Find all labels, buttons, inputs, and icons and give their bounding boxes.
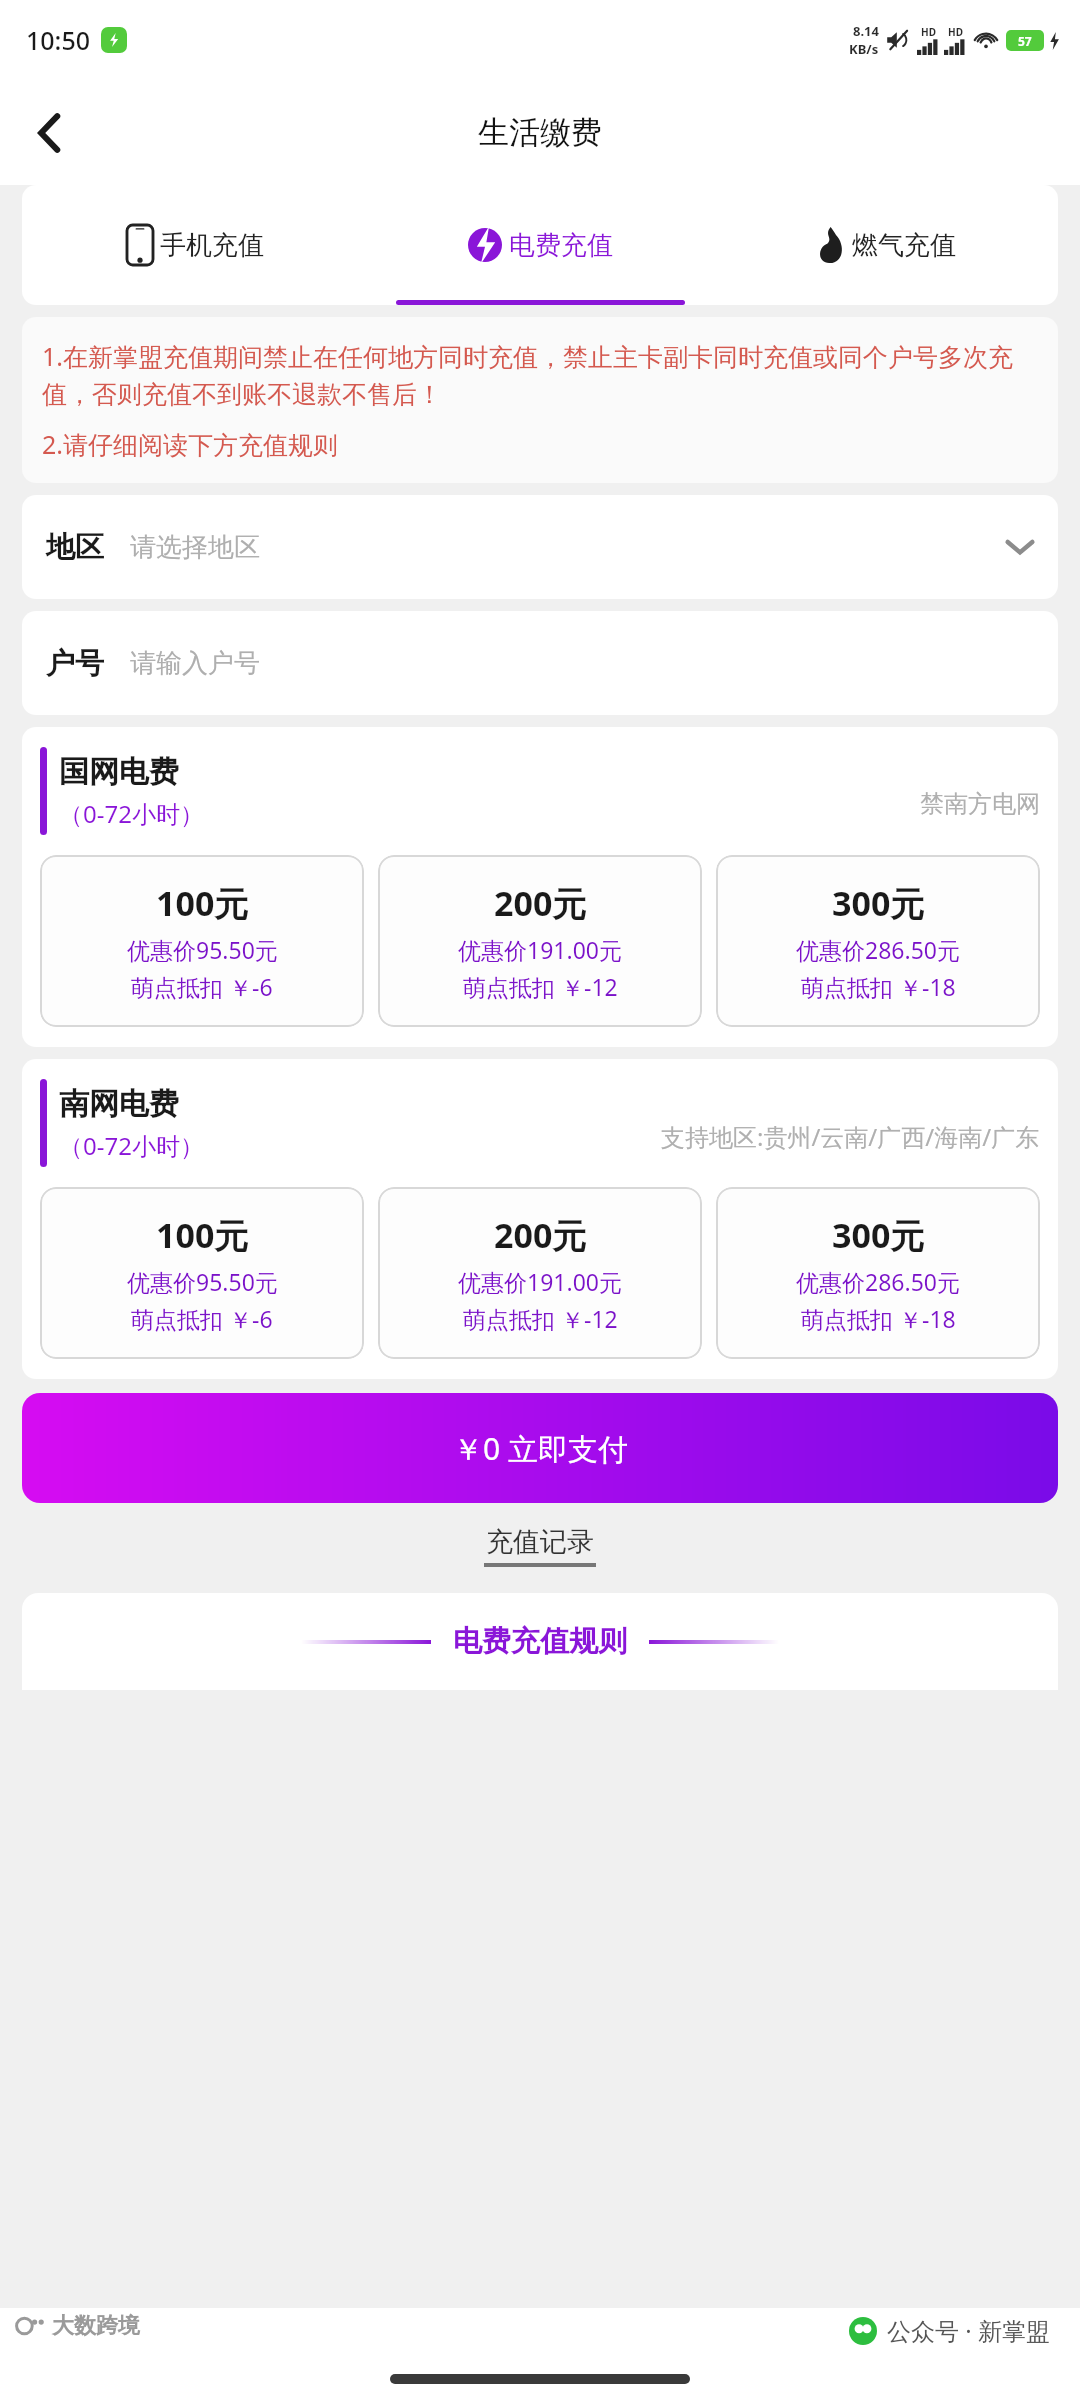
staticText: 请输入户号 xyxy=(130,647,260,680)
staticText: 100元 xyxy=(156,1212,249,1258)
staticText: 国网电费 xyxy=(59,753,179,791)
staticText: 优惠价191.00元 xyxy=(458,1266,622,1297)
button[interactable]: 100元 xyxy=(40,855,364,1027)
button[interactable]: Back xyxy=(18,101,82,165)
button[interactable]: 100元 xyxy=(40,1187,364,1359)
staticText: 南网电费 xyxy=(59,1085,179,1123)
staticText: 300元 xyxy=(832,1212,925,1258)
staticText: （0-72小时） xyxy=(59,1129,204,1162)
staticText: 大数跨境 xyxy=(52,2312,140,2340)
button[interactable]: 200元 xyxy=(378,855,702,1027)
staticText: 萌点抵扣 ￥-12 xyxy=(463,1303,618,1334)
staticText: 2.请仔细阅读下方充值规则 xyxy=(42,427,339,461)
staticText: 8.14 xyxy=(853,22,879,40)
staticText: 充值记录 xyxy=(486,1525,594,1559)
staticText: 萌点抵扣 ￥-6 xyxy=(131,971,273,1002)
staticText: 优惠价95.50元 xyxy=(127,1266,278,1297)
staticText: 100元 xyxy=(156,880,249,926)
staticText: 优惠价95.50元 xyxy=(127,934,278,965)
staticText: 10:50 xyxy=(26,23,91,57)
button[interactable]: 手机充值 xyxy=(22,185,368,305)
staticText: 手机充值 xyxy=(160,229,264,262)
button[interactable]: 300元 xyxy=(716,855,1040,1027)
staticText: 支持地区:贵州/云南/广西/海南/广东 xyxy=(661,1120,1040,1153)
staticText: 燃气充值 xyxy=(852,229,956,262)
staticText: 电费充值规则 xyxy=(453,1623,627,1660)
button[interactable]: 户号 xyxy=(22,611,1058,715)
staticText: 地区 xyxy=(46,529,104,566)
staticText: （0-72小时） xyxy=(59,797,204,830)
staticText: 萌点抵扣 ￥-12 xyxy=(463,971,618,1002)
staticText: KB/s xyxy=(849,40,879,58)
button[interactable]: 电费充值 xyxy=(368,185,713,305)
staticText: 优惠价286.50元 xyxy=(796,1266,960,1297)
staticText: HD xyxy=(921,25,936,39)
staticText: 优惠价191.00元 xyxy=(458,934,622,965)
staticText: 57 xyxy=(1018,33,1032,49)
button[interactable]: 300元 xyxy=(716,1187,1040,1359)
staticText: 1.在新掌盟充值期间禁止在任何地方同时充值，禁止主卡副卡同时充值或同个户号多次充… xyxy=(42,339,1038,411)
staticText: 电费充值 xyxy=(509,229,613,262)
button[interactable]: 地区 xyxy=(22,495,1058,599)
staticText: 请选择地区 xyxy=(130,531,260,564)
button[interactable]: 充值记录 xyxy=(474,1521,606,1571)
staticText: 公众号 · 新掌盟 xyxy=(887,2314,1050,2347)
staticText: HD xyxy=(948,25,963,39)
staticText: 200元 xyxy=(494,880,587,926)
staticText: ￥0 立即支付 xyxy=(453,1428,628,1469)
button[interactable]: 200元 xyxy=(378,1187,702,1359)
staticText: 户号 xyxy=(46,645,104,682)
staticText: 生活缴费 xyxy=(478,113,602,152)
staticText: 优惠价286.50元 xyxy=(796,934,960,965)
staticText: 萌点抵扣 ￥-18 xyxy=(801,1303,956,1334)
staticText: 萌点抵扣 ￥-6 xyxy=(131,1303,273,1334)
staticText: 萌点抵扣 ￥-18 xyxy=(801,971,956,1002)
staticText: 200元 xyxy=(494,1212,587,1258)
button[interactable]: 燃气充值 xyxy=(713,185,1058,305)
button[interactable]: ￥0 立即支付 xyxy=(22,1393,1058,1503)
staticText: 禁南方电网 xyxy=(920,789,1040,819)
staticText: 300元 xyxy=(832,880,925,926)
